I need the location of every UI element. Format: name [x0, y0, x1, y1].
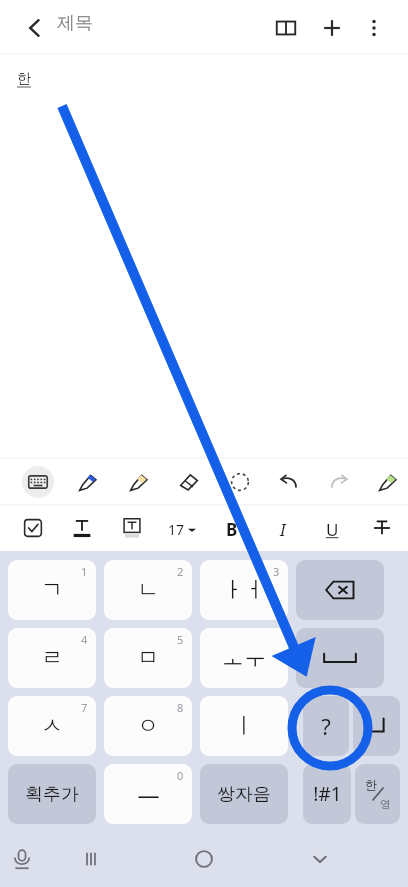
staticText: 17: [168, 520, 185, 539]
button[interactable]: ㄴ: [104, 560, 192, 620]
button[interactable]: Home: [182, 837, 226, 881]
button[interactable]: Hide keyboard: [298, 837, 342, 881]
staticText: ㅇ: [137, 712, 159, 740]
button[interactable]: Voice input: [0, 837, 44, 881]
button[interactable]: B: [215, 514, 249, 544]
button[interactable]: Text color: [64, 510, 100, 546]
staticText: 제목: [57, 12, 93, 35]
staticText: ㅅ: [41, 712, 63, 740]
button[interactable]: U: [315, 514, 349, 544]
staticText: 1: [81, 564, 88, 579]
button[interactable]: Checklist: [15, 510, 51, 546]
staticText: ㅗㅜ: [222, 644, 266, 672]
button[interactable]: !#1: [303, 764, 351, 824]
staticText: B: [226, 518, 238, 541]
staticText: 한: [17, 70, 31, 88]
staticText: ㄴ: [137, 576, 159, 604]
button[interactable]: Enter: [353, 696, 400, 756]
staticText: 8: [177, 700, 184, 715]
staticText: 5: [177, 632, 184, 647]
staticText: 2: [177, 564, 184, 579]
button[interactable]: ㅏㅓ: [200, 560, 288, 620]
button[interactable]: Keyboard: [20, 464, 56, 500]
staticText: 획추가: [25, 783, 79, 806]
staticText: 4: [81, 632, 88, 647]
button[interactable]: Undo: [271, 464, 307, 500]
button[interactable]: ㅗㅜ: [200, 628, 288, 688]
button[interactable]: Add: [318, 14, 346, 42]
button[interactable]: Back: [20, 13, 50, 43]
button[interactable]: Recent apps: [69, 837, 113, 881]
button[interactable]: I: [266, 514, 300, 544]
staticText: ㅣ: [233, 712, 255, 740]
button[interactable]: 17: [160, 516, 204, 542]
button[interactable]: ㅅ: [8, 696, 96, 756]
button[interactable]: —: [104, 764, 192, 824]
staticText: ㅏㅓ: [222, 576, 266, 604]
button[interactable]: Redo: [321, 464, 357, 500]
staticText: 7: [81, 700, 88, 715]
button[interactable]: ㅁ: [104, 628, 192, 688]
staticText: U: [326, 518, 339, 541]
button[interactable]: Text background: [114, 510, 150, 546]
button[interactable]: More options: [360, 14, 388, 42]
button[interactable]: Pen: [70, 464, 106, 500]
button[interactable]: Language toggle: [355, 764, 400, 824]
button[interactable]: Strikethrough: [364, 510, 400, 546]
staticText: ㄹ: [41, 644, 63, 672]
staticText: 0: [177, 768, 184, 783]
staticText: 쌍자음: [217, 783, 271, 806]
button[interactable]: ㄱ: [8, 560, 96, 620]
staticText: 영: [380, 797, 391, 811]
staticText: !#1: [313, 781, 342, 807]
button[interactable]: Highlighter: [121, 464, 157, 500]
staticText: ㅁ: [137, 644, 159, 672]
button[interactable]: Space: [296, 628, 384, 688]
button[interactable]: ㄹ: [8, 628, 96, 688]
staticText: —: [137, 779, 160, 809]
button[interactable]: Backspace: [296, 560, 384, 620]
button[interactable]: Reading view: [272, 14, 300, 42]
button[interactable]: ㅇ: [104, 696, 192, 756]
button[interactable]: Pen settings: [370, 464, 406, 500]
staticText: ㄱ: [41, 576, 63, 604]
button[interactable]: 획추가: [8, 764, 96, 824]
staticText: 3: [273, 564, 280, 579]
button[interactable]: 쌍자음: [200, 764, 288, 824]
button[interactable]: Select: [222, 464, 258, 500]
button[interactable]: Eraser: [171, 464, 207, 500]
staticText: I: [280, 518, 286, 541]
button[interactable]: ㅣ: [200, 696, 288, 756]
staticText: 한: [365, 777, 377, 792]
button[interactable]: ?: [303, 696, 349, 756]
staticText: ?: [321, 711, 331, 741]
